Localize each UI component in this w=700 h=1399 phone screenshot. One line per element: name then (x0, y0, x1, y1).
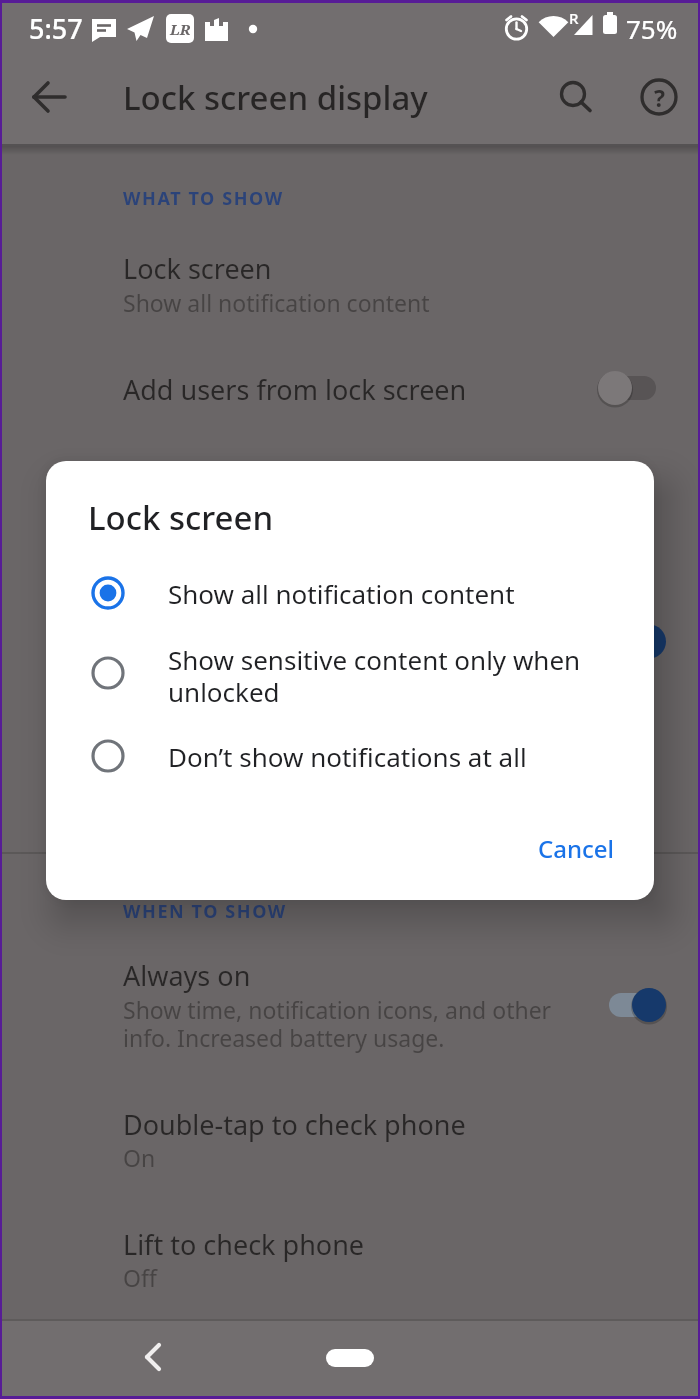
staticText: Show all notification content (168, 576, 515, 611)
staticText: 75% (626, 11, 678, 46)
staticText: On (123, 1142, 156, 1173)
staticText: Show all notification content (123, 287, 430, 318)
staticText: 5:57 (29, 10, 83, 47)
button[interactable] (24, 72, 74, 122)
button[interactable]: Cancel (516, 818, 636, 878)
staticText: Lock screen display (123, 75, 428, 120)
button[interactable]: ? (631, 69, 687, 125)
staticText: Lift to check phone (123, 1226, 365, 1263)
button[interactable] (326, 1349, 374, 1367)
staticText: WHAT TO SHOW (123, 186, 284, 211)
staticText: R (569, 8, 579, 28)
staticText: Lock screen (88, 495, 274, 540)
staticText: unlocked (168, 674, 280, 709)
button[interactable] (595, 977, 675, 1033)
button[interactable] (78, 629, 618, 719)
staticText: ? (654, 82, 665, 113)
staticText: info. Increased battery usage. (123, 1022, 445, 1053)
button[interactable] (130, 1333, 178, 1381)
staticText: LR (170, 19, 191, 39)
staticText: Always on (123, 957, 251, 994)
button[interactable] (78, 563, 578, 623)
staticText: WHEN TO SHOW (123, 899, 287, 924)
button[interactable] (590, 360, 670, 416)
staticText: Don’t show notifications at all (168, 739, 527, 774)
button[interactable] (548, 69, 604, 125)
staticText: Lock screen (123, 250, 272, 287)
staticText: Show time, notification icons, and other (123, 994, 552, 1025)
staticText: Add users from lock screen (123, 371, 467, 408)
staticText: Off (123, 1262, 157, 1293)
button[interactable] (78, 726, 578, 786)
staticText: Cancel (538, 832, 615, 865)
staticText: Show sensitive content only when (168, 642, 581, 677)
staticText: Double-tap to check phone (123, 1106, 466, 1143)
button[interactable] (100, 238, 580, 338)
